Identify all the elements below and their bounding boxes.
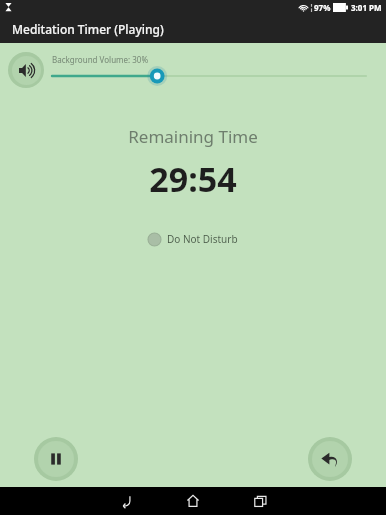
button[interactable]: Do Not Disturb [146,230,240,248]
staticText: Meditation Timer (Playing) [12,21,164,37]
staticText: 3:01 PM [351,2,382,13]
button[interactable]: Back [113,488,139,514]
staticText: Remaining Time [128,125,258,148]
button[interactable]: Mute background sound [8,52,44,88]
button[interactable] [44,65,376,87]
button[interactable]: Pause [34,437,78,481]
button[interactable]: Reset [308,437,352,481]
staticText: Background Volume: 30% [52,54,149,65]
button[interactable]: Recent apps [247,488,273,514]
staticText: Do Not Disturb [167,232,238,246]
staticText: 29:54 [149,156,237,202]
button[interactable]: Home [180,488,206,514]
staticText: 97% [314,2,331,13]
